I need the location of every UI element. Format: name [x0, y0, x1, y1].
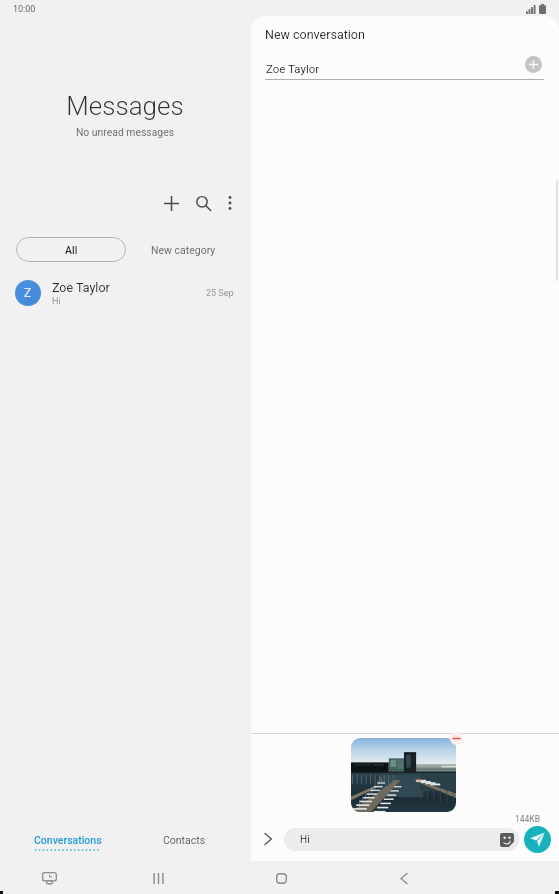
staticText: New category	[151, 244, 216, 256]
staticText: Hi	[52, 296, 61, 307]
button[interactable]: Back	[382, 863, 426, 893]
button[interactable]: Contacts	[148, 823, 220, 865]
button[interactable]: Hi	[284, 828, 519, 851]
staticText: 25 Sep	[206, 288, 234, 299]
button[interactable]: Recents	[136, 863, 180, 893]
staticText: Zoe Taylor	[52, 280, 110, 295]
button[interactable]: Expand options	[257, 828, 279, 850]
button[interactable]: Stickers	[500, 833, 514, 847]
staticText: 10:00	[13, 4, 36, 15]
button[interactable]: Send	[524, 826, 551, 853]
button[interactable]: Conversations	[22, 823, 114, 865]
button[interactable]: Add recipient	[525, 56, 542, 73]
button[interactable]: Home	[259, 863, 303, 893]
staticText: Hi	[300, 834, 310, 846]
button[interactable]: Z	[0, 273, 251, 313]
staticText: Z	[24, 286, 32, 300]
button[interactable]: Search	[188, 188, 218, 218]
button[interactable]: New conversation	[156, 188, 186, 218]
button[interactable]: Screenshot	[31, 863, 67, 893]
button[interactable]: New category	[151, 237, 216, 262]
staticText: No unread messages	[0, 126, 250, 138]
staticText: All	[65, 244, 78, 256]
staticText: 144KB	[515, 814, 540, 824]
button[interactable]: All	[16, 237, 126, 262]
staticText: Contacts	[163, 834, 206, 846]
staticText: New conversation	[265, 27, 365, 42]
button[interactable]: More options	[215, 188, 245, 218]
staticText: Zoe Taylor	[266, 62, 320, 75]
staticText: Conversations	[34, 834, 102, 846]
staticText: Messages	[0, 91, 250, 121]
button[interactable]: Remove attachment	[450, 732, 463, 745]
